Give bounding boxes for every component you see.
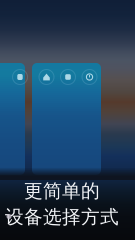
staticText: 设备选择方式 (5, 205, 119, 228)
staticText: 更简单的 (24, 180, 100, 202)
